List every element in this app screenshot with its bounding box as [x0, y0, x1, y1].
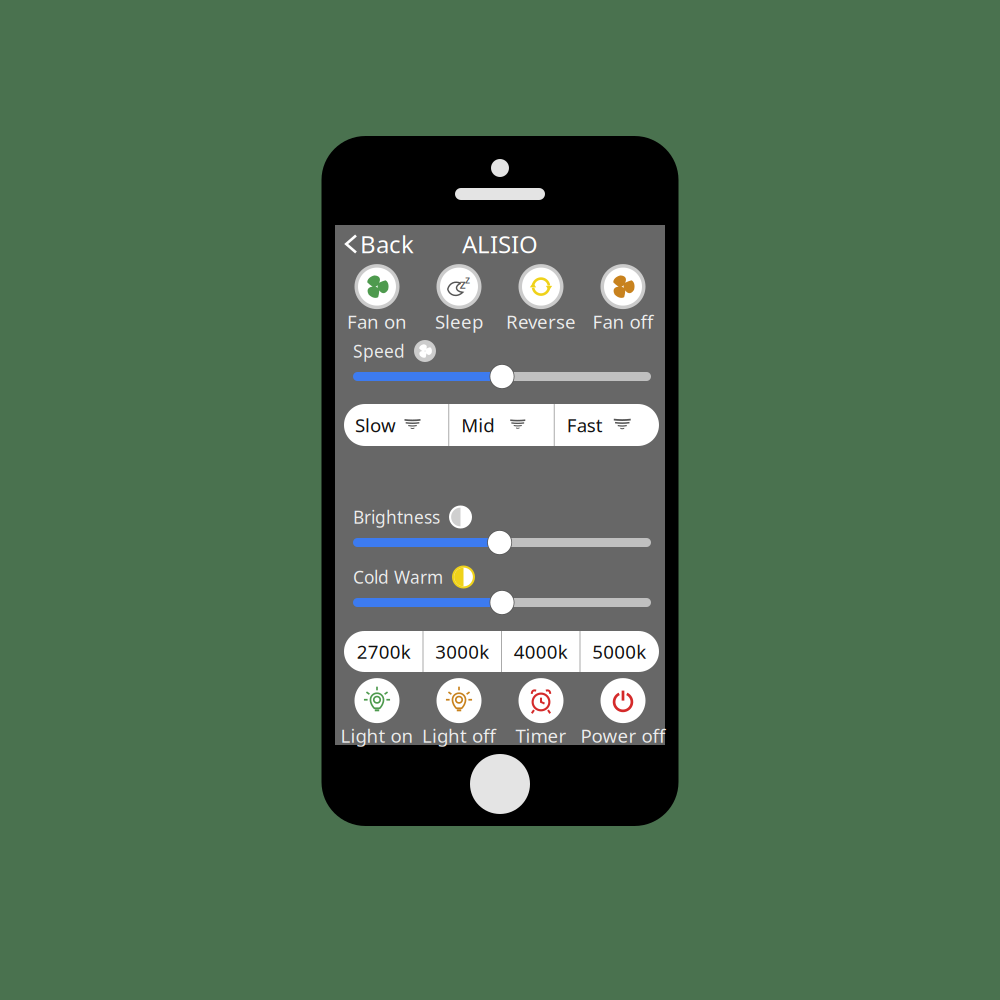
staticText: Mid — [461, 413, 494, 437]
button[interactable]: Mid — [449, 404, 554, 446]
button[interactable]: Power off — [582, 678, 664, 748]
button[interactable]: 4000k — [502, 631, 579, 672]
staticText: Reverse — [506, 309, 576, 334]
button[interactable]: z — [418, 264, 500, 334]
staticText: Light off — [422, 723, 496, 748]
button[interactable]: Fan on — [336, 264, 418, 334]
staticText: Cold Warm — [353, 565, 443, 588]
staticText: Timer — [515, 723, 566, 748]
staticText: 4000k — [514, 639, 568, 664]
button[interactable]: 3000k — [423, 631, 501, 672]
staticText: z — [465, 272, 470, 286]
button[interactable]: Reverse — [500, 264, 582, 334]
staticText: 5000k — [592, 639, 646, 664]
button[interactable]: Slow — [344, 404, 448, 446]
staticText: Sleep — [435, 309, 483, 334]
staticText: Light on — [340, 723, 413, 748]
button[interactable]: Fan off — [582, 264, 664, 334]
button[interactable]: Back — [335, 231, 420, 257]
staticText: Speed — [353, 339, 405, 362]
button[interactable]: 2700k — [345, 631, 422, 672]
staticText: ALISIO — [462, 228, 538, 260]
staticText: Fast — [567, 413, 603, 437]
staticText: Slow — [355, 413, 396, 437]
staticText: 2700k — [357, 639, 411, 664]
button[interactable]: Fast — [555, 404, 659, 446]
button[interactable]: Timer — [500, 678, 582, 748]
staticText: Fan off — [592, 309, 653, 334]
staticText: z — [459, 275, 465, 292]
button[interactable]: 5000k — [580, 631, 658, 672]
button[interactable]: Light off — [418, 678, 500, 748]
staticText: Brightness — [353, 505, 440, 528]
staticText: Fan on — [347, 309, 407, 334]
staticText: 3000k — [435, 639, 489, 664]
staticText: Power off — [580, 723, 665, 748]
staticText: Back — [360, 228, 414, 260]
button[interactable]: Light on — [336, 678, 418, 748]
